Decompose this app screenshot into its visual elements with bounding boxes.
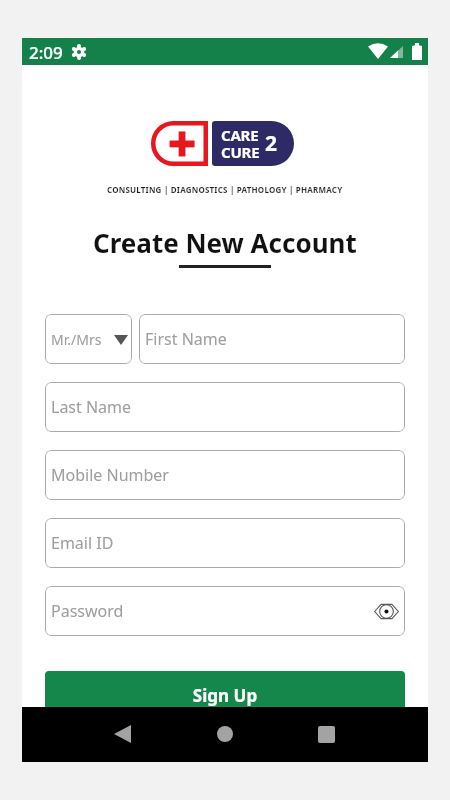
button[interactable]: Email ID xyxy=(45,518,405,568)
button[interactable]: Back xyxy=(100,712,144,756)
staticText: Sign Up xyxy=(45,684,405,707)
staticText: CARE xyxy=(221,125,259,145)
staticText: Last Name xyxy=(51,396,132,418)
staticText: Password xyxy=(51,600,124,622)
staticText: Create New Account xyxy=(93,225,357,260)
staticText: Email ID xyxy=(51,532,114,554)
staticText: First Name xyxy=(145,328,227,350)
staticText: CURE xyxy=(221,142,260,162)
button[interactable]: Recents xyxy=(304,712,348,756)
button[interactable]: Last Name xyxy=(45,382,405,432)
staticText: 2 xyxy=(265,129,278,158)
other: Show password xyxy=(373,603,400,620)
staticText: Mr./Mrs xyxy=(51,330,102,349)
button[interactable]: First Name xyxy=(139,314,405,364)
button[interactable]: Sign Up xyxy=(45,671,405,725)
button[interactable]: Home xyxy=(203,712,247,756)
button[interactable]: Mr./Mrs xyxy=(45,314,132,364)
staticText: CONSULTING | DIAGNOSTICS | PATHOLOGY | P… xyxy=(107,184,343,195)
button[interactable]: Mobile Number xyxy=(45,450,405,500)
button[interactable]: Password xyxy=(45,586,405,636)
staticText: Mobile Number xyxy=(51,464,169,486)
staticText: 2:09 xyxy=(29,41,63,64)
